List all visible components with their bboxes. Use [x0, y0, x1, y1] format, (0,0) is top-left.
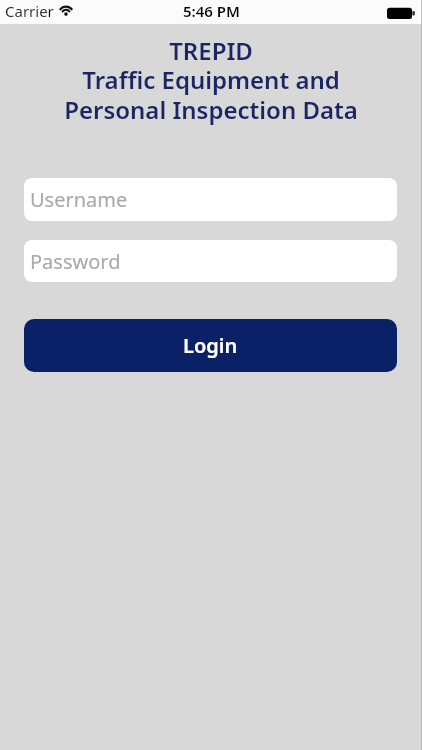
staticText: Username: [30, 186, 128, 213]
staticText: Password: [30, 248, 121, 275]
button[interactable]: Login: [24, 319, 397, 372]
button[interactable]: Password: [24, 240, 397, 282]
staticText: 5:46 PM: [183, 1, 240, 21]
staticText: Carrier: [5, 1, 54, 21]
staticText: Login: [183, 332, 238, 359]
button[interactable]: Username: [24, 178, 397, 221]
staticText: TREPID Traffic Equipment and Personal In…: [0, 34, 422, 126]
